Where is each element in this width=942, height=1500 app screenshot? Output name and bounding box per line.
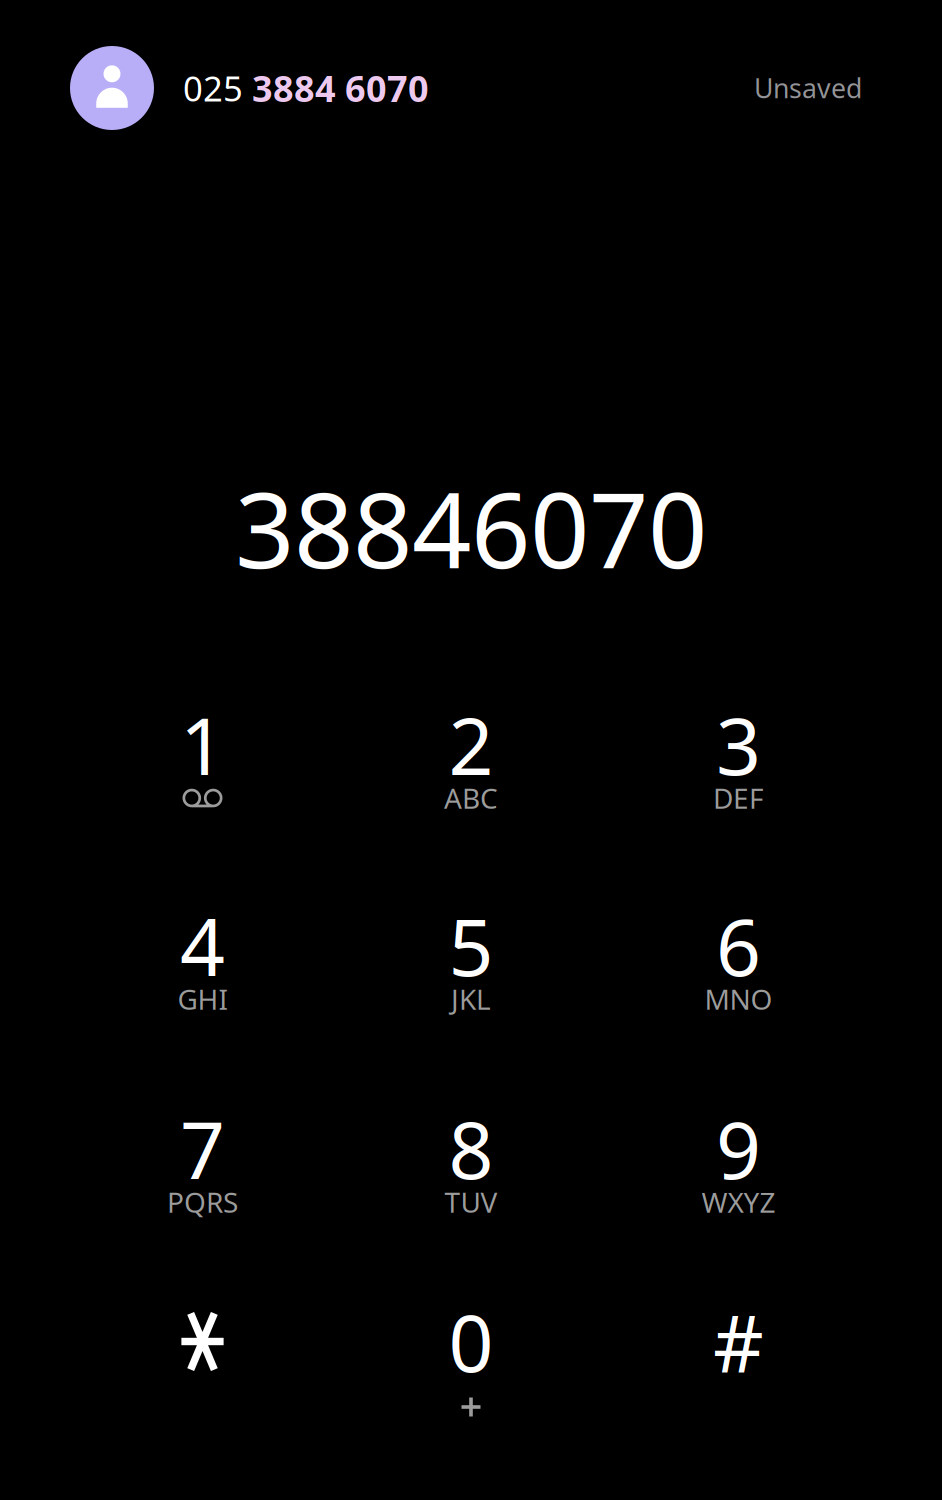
button[interactable]: 0 plus xyxy=(340,1263,602,1441)
staticText: Unsaved xyxy=(754,70,862,106)
button[interactable]: 2 A B C xyxy=(340,666,602,844)
button[interactable]: 025 xyxy=(183,46,429,130)
button[interactable]: Pound xyxy=(607,1263,869,1441)
staticText: GHI xyxy=(177,980,227,1018)
button[interactable]: 9 W X Y Z xyxy=(607,1070,869,1248)
staticText: 6 xyxy=(716,893,761,998)
staticText: 9 xyxy=(716,1096,761,1201)
staticText: 5 xyxy=(448,893,493,998)
staticText: DEF xyxy=(713,779,764,817)
staticText: # xyxy=(713,1289,764,1394)
staticText: PQRS xyxy=(167,1183,238,1221)
staticText: TUV xyxy=(444,1183,497,1221)
staticText: ABC xyxy=(444,779,498,817)
staticText: 0 xyxy=(448,1289,493,1394)
staticText: 38846070 xyxy=(235,459,707,597)
staticText: 1 xyxy=(180,692,225,797)
staticText: 3 xyxy=(716,692,761,797)
staticText: WXYZ xyxy=(701,1183,775,1221)
staticText: 025 xyxy=(183,65,252,111)
staticText: MNO xyxy=(704,980,772,1018)
button[interactable]: 6 M N O xyxy=(607,867,869,1045)
staticText: JKL xyxy=(451,980,491,1018)
staticText: 4 xyxy=(180,893,225,998)
button[interactable]: 8 T U V xyxy=(340,1070,602,1248)
staticText: 2 xyxy=(448,692,493,797)
staticText: 8 xyxy=(448,1096,493,1201)
button[interactable]: Star xyxy=(71,1263,333,1441)
staticText: 3884 6070 xyxy=(252,64,429,112)
button[interactable]: 7 P Q R S xyxy=(71,1070,333,1248)
button[interactable]: 3 D E F xyxy=(607,666,869,844)
button[interactable]: Contact photo xyxy=(70,46,154,130)
button[interactable]: 5 J K L xyxy=(340,867,602,1045)
staticText: 7 xyxy=(180,1096,225,1201)
button[interactable]: 1 voicemail xyxy=(71,666,333,844)
button[interactable]: 4 G H I xyxy=(71,867,333,1045)
button[interactable]: Unsaved xyxy=(754,46,862,130)
